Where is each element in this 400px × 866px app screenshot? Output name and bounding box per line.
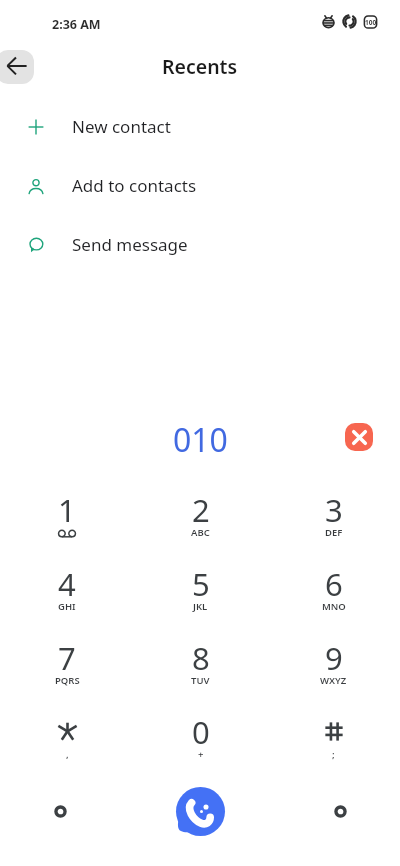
staticText: 5: [192, 563, 210, 605]
button[interactable]: 7: [0, 637, 134, 711]
staticText: 6: [325, 563, 343, 605]
staticText: ;: [332, 748, 335, 761]
staticText: 9: [325, 637, 343, 679]
button[interactable]: 0: [134, 711, 267, 785]
button[interactable]: 6: [267, 563, 400, 637]
staticText: WXYZ: [320, 674, 347, 687]
staticText: TUV: [191, 674, 210, 687]
button[interactable]: 2: [134, 489, 267, 563]
staticText: 2: [192, 489, 210, 531]
staticText: 7: [58, 637, 76, 679]
button[interactable]: 9: [267, 637, 400, 711]
button[interactable]: 3: [267, 489, 400, 563]
staticText: 4: [58, 563, 76, 605]
button[interactable]: Call: [176, 787, 225, 836]
staticText: 2:36 AM: [52, 16, 101, 33]
staticText: 010: [173, 418, 228, 456]
button[interactable]: New contact: [0, 97, 400, 156]
staticText: GHI: [58, 600, 76, 613]
button[interactable]: 5: [134, 563, 267, 637]
button[interactable]: 4: [0, 563, 134, 637]
staticText: ABC: [191, 526, 210, 539]
staticText: Send message: [72, 233, 188, 256]
button[interactable]: Delete: [345, 423, 373, 451]
button[interactable]: ;: [267, 711, 400, 785]
button[interactable]: Add to contacts: [0, 156, 400, 215]
staticText: ,: [66, 748, 69, 761]
staticText: 0: [192, 711, 210, 753]
staticText: 1: [58, 489, 76, 531]
staticText: 3: [325, 489, 343, 531]
staticText: New contact: [72, 115, 171, 138]
button[interactable]: 1: [0, 489, 134, 563]
button[interactable]: ,: [0, 711, 134, 785]
staticText: MNO: [322, 600, 346, 613]
button[interactable]: Back: [0, 50, 34, 84]
button[interactable]: More options: [321, 792, 359, 830]
button[interactable]: Video call: [41, 792, 79, 830]
staticText: DEF: [325, 526, 343, 539]
staticText: Recents: [162, 53, 238, 80]
button[interactable]: 8: [134, 637, 267, 711]
button[interactable]: Send message: [0, 215, 400, 274]
staticText: 8: [192, 637, 210, 679]
staticText: PQRS: [55, 674, 80, 687]
staticText: +: [198, 748, 204, 761]
staticText: JKL: [193, 600, 208, 613]
staticText: 100: [365, 18, 377, 27]
staticText: Add to contacts: [72, 174, 197, 197]
